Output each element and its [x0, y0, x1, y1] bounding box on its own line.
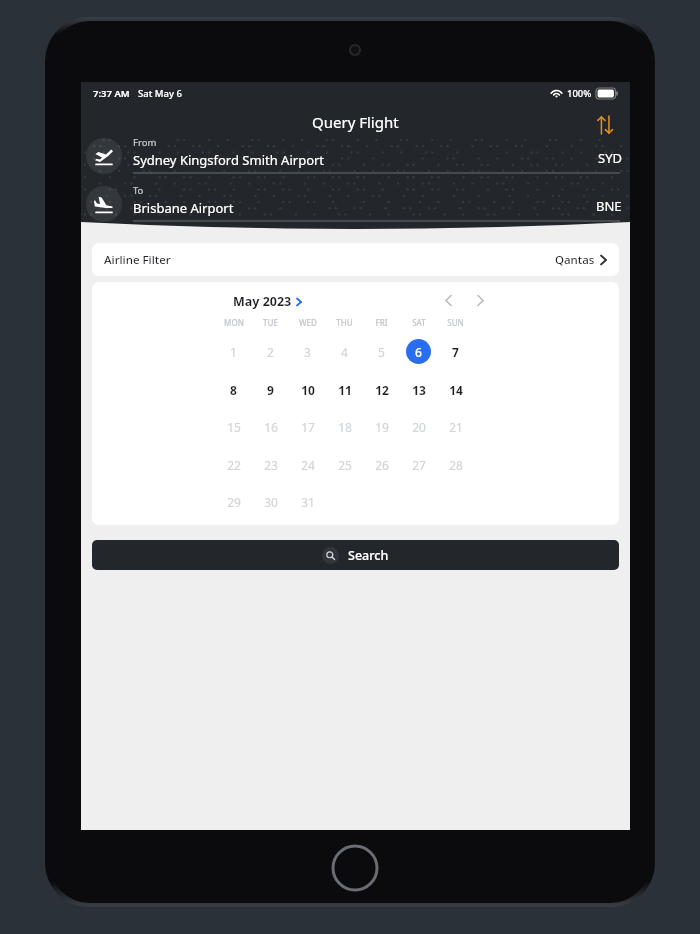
button[interactable]: 19 [369, 414, 394, 439]
staticText: 21 [449, 419, 463, 435]
button[interactable]: Airline Filter [92, 243, 619, 276]
staticText: 13 [412, 382, 426, 398]
staticText: 14 [449, 382, 463, 398]
button[interactable]: 14 [443, 377, 468, 402]
staticText: 3 [304, 344, 311, 360]
button[interactable]: 28 [443, 452, 468, 477]
button[interactable]: 7 [443, 339, 468, 364]
button[interactable]: To [81, 182, 630, 226]
staticText: 22 [227, 457, 241, 473]
button[interactable]: 3 [295, 339, 320, 364]
staticText: 23 [264, 457, 278, 473]
staticText: Search [348, 547, 389, 564]
button[interactable]: 26 [369, 452, 394, 477]
button[interactable]: 11 [332, 377, 357, 402]
button[interactable]: 4 [332, 339, 357, 364]
button[interactable]: Previous month [436, 288, 460, 312]
staticText: Airline Filter [104, 252, 171, 268]
staticText: Sydney Kingsford Smith Airport [133, 151, 325, 169]
staticText: 1 [230, 344, 237, 360]
button[interactable]: 15 [221, 414, 246, 439]
button[interactable]: 1 [221, 339, 246, 364]
staticText: MON [224, 317, 244, 328]
staticText: 9 [267, 382, 274, 398]
staticText: THU [336, 317, 353, 328]
staticText: Qantas [555, 252, 595, 268]
staticText: 26 [375, 457, 389, 473]
staticText: 7 [452, 344, 459, 360]
button[interactable]: Swap origin and destination [588, 108, 622, 142]
staticText: To [133, 184, 144, 197]
button[interactable]: 23 [258, 452, 283, 477]
button[interactable]: From [81, 134, 630, 178]
button[interactable]: May 2023 [233, 293, 302, 310]
staticText: WED [299, 317, 317, 328]
staticText: 20 [412, 419, 426, 435]
staticText: 30 [264, 494, 278, 510]
staticText: 25 [338, 457, 352, 473]
staticText: 100% [567, 87, 592, 100]
button[interactable]: 17 [295, 414, 320, 439]
staticText: 4 [341, 344, 348, 360]
button[interactable]: Next month [468, 288, 492, 312]
button[interactable]: 22 [221, 452, 246, 477]
button[interactable]: 2 [258, 339, 283, 364]
staticText: BNE [596, 197, 622, 215]
staticText: 19 [375, 419, 389, 435]
button[interactable]: 29 [221, 489, 246, 514]
staticText: May 2023 [233, 293, 292, 310]
staticText: 2 [267, 344, 274, 360]
button[interactable]: 21 [443, 414, 468, 439]
button[interactable]: 8 [221, 377, 246, 402]
button[interactable]: 16 [258, 414, 283, 439]
button[interactable]: 31 [295, 489, 320, 514]
staticText: 29 [227, 494, 241, 510]
staticText: 28 [449, 457, 463, 473]
button[interactable]: 27 [406, 452, 431, 477]
button[interactable]: 18 [332, 414, 357, 439]
staticText: 6 [415, 344, 422, 360]
staticText: Brisbane Airport [133, 199, 234, 217]
staticText: 12 [375, 382, 389, 398]
staticText: Sat May 6 [138, 87, 182, 100]
staticText: 8 [230, 382, 237, 398]
button[interactable]: 13 [406, 377, 431, 402]
button[interactable]: 9 [258, 377, 283, 402]
staticText: 16 [264, 419, 278, 435]
staticText: From [133, 136, 157, 149]
staticText: 11 [338, 382, 352, 398]
button[interactable]: 20 [406, 414, 431, 439]
staticText: 5 [378, 344, 385, 360]
button[interactable]: 12 [369, 377, 394, 402]
staticText: 31 [301, 494, 315, 510]
button[interactable]: 30 [258, 489, 283, 514]
staticText: TUE [263, 317, 278, 328]
staticText: 15 [227, 419, 241, 435]
staticText: SUN [447, 317, 464, 328]
staticText: 17 [301, 419, 315, 435]
staticText: FRI [375, 317, 388, 328]
button[interactable]: 10 [295, 377, 320, 402]
staticText: Query Flight [312, 112, 399, 132]
button[interactable]: 6 [406, 339, 431, 364]
staticText: SYD [598, 149, 622, 167]
button[interactable]: 5 [369, 339, 394, 364]
button[interactable]: Search [92, 540, 619, 570]
staticText: 18 [338, 419, 352, 435]
button[interactable]: 25 [332, 452, 357, 477]
staticText: SAT [412, 317, 426, 328]
button[interactable]: 24 [295, 452, 320, 477]
staticText: 27 [412, 457, 426, 473]
staticText: 24 [301, 457, 315, 473]
staticText: 7:37 AM [93, 87, 130, 100]
staticText: 10 [301, 382, 315, 398]
